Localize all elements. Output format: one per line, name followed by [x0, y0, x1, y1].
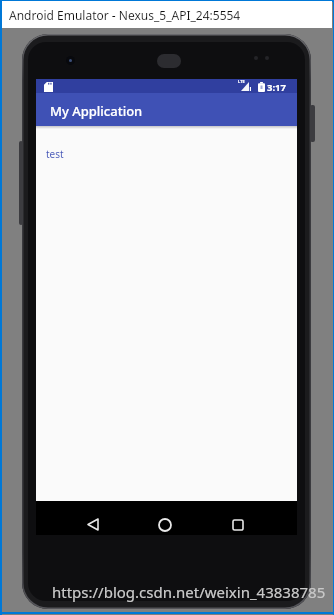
staticText: 3:17 [267, 81, 286, 94]
button[interactable] [87, 518, 99, 531]
button[interactable]: My Application [36, 93, 297, 126]
button[interactable]: Android Emulator - Nexus_5_API_24:5554 [2, 1, 332, 28]
staticText: My Application [50, 102, 143, 120]
button[interactable]: test [46, 147, 64, 161]
staticText: https://blog.csdn.net/weixin_43838785 [52, 582, 326, 602]
button[interactable] [158, 518, 172, 532]
staticText: Android Emulator - Nexus_5_API_24:5554 [9, 7, 241, 23]
button[interactable] [232, 519, 244, 531]
staticText: LTE [238, 79, 245, 84]
